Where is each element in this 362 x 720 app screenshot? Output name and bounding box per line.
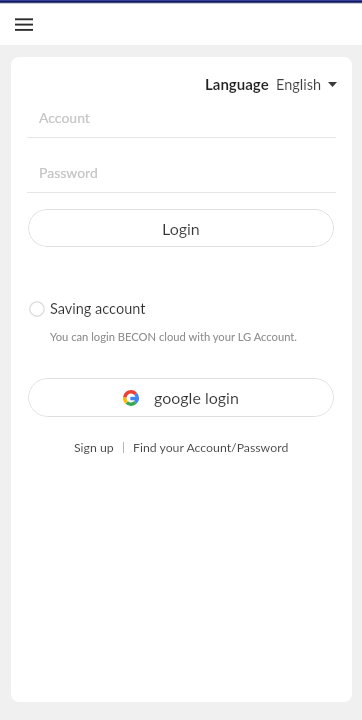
staticText: Password bbox=[39, 164, 98, 181]
button[interactable]: Saving account bbox=[29, 300, 146, 317]
button[interactable]: Sign up bbox=[74, 440, 114, 455]
staticText: Login bbox=[162, 219, 200, 238]
button[interactable]: Language bbox=[205, 75, 337, 93]
staticText: English bbox=[276, 76, 322, 93]
button[interactable]: Login bbox=[28, 209, 334, 247]
staticText: Language bbox=[205, 75, 269, 93]
button[interactable]: Account bbox=[27, 107, 336, 138]
staticText: You can login BECON cloud with your LG A… bbox=[50, 330, 297, 343]
button[interactable]: Find your Account/Password bbox=[133, 440, 289, 455]
staticText: google login bbox=[154, 388, 239, 407]
staticText: Account bbox=[39, 109, 90, 126]
button[interactable]: Password bbox=[27, 162, 336, 193]
button[interactable]: google login bbox=[28, 378, 334, 417]
button[interactable]: Menu bbox=[10, 9, 36, 39]
staticText: Saving account bbox=[50, 300, 146, 317]
